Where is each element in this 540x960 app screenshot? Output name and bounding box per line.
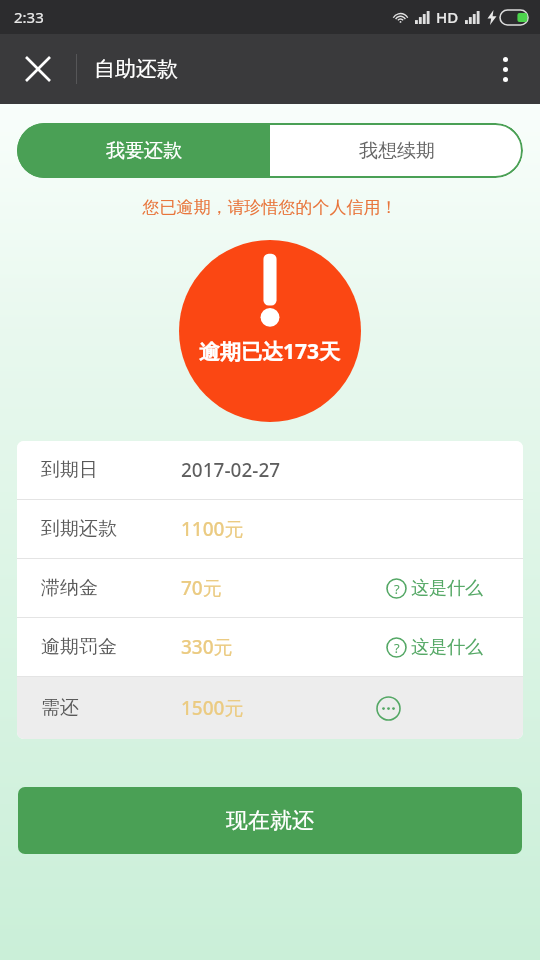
staticText: ? (394, 580, 400, 598)
button[interactable]: 现在就还 (18, 787, 522, 854)
staticText: 我想续期 (359, 139, 435, 163)
button[interactable]: 需还 (17, 677, 523, 739)
staticText: 70元 (181, 575, 222, 601)
staticText: 滞纳金 (41, 576, 181, 600)
staticText: 1500元 (181, 695, 244, 721)
staticText: 这是什么 (411, 636, 483, 659)
button[interactable]: 到期日 (17, 441, 523, 499)
staticText: 自助还款 (94, 56, 178, 82)
button[interactable]: Close (12, 43, 64, 95)
staticText: 1100元 (181, 516, 244, 542)
button[interactable]: ? (386, 636, 483, 659)
staticText: 到期日 (41, 458, 181, 482)
staticText: 2017-02-27 (181, 457, 281, 483)
staticText: 您已逾期，请珍惜您的个人信用！ (0, 197, 540, 218)
button[interactable]: 我想续期 (270, 123, 523, 178)
staticText: 我要还款 (106, 139, 182, 163)
staticText: 现在就还 (226, 807, 314, 835)
staticText: ? (394, 639, 400, 657)
staticText: 到期还款 (41, 517, 181, 541)
button[interactable]: ? (386, 577, 483, 600)
button[interactable]: More details (376, 696, 401, 721)
button[interactable]: 滞纳金 (17, 559, 523, 617)
staticText: 2:33 (14, 7, 44, 27)
staticText: 需还 (41, 696, 181, 720)
button[interactable]: 到期还款 (17, 500, 523, 558)
button[interactable]: 逾期罚金 (17, 618, 523, 676)
staticText: 这是什么 (411, 577, 483, 600)
staticText: 逾期罚金 (41, 635, 181, 659)
staticText: 330元 (181, 634, 233, 660)
staticText: HD (436, 7, 459, 27)
button[interactable]: 我要还款 (17, 123, 270, 178)
button[interactable]: More options (480, 44, 530, 94)
staticText: 逾期已达173天 (199, 337, 341, 366)
